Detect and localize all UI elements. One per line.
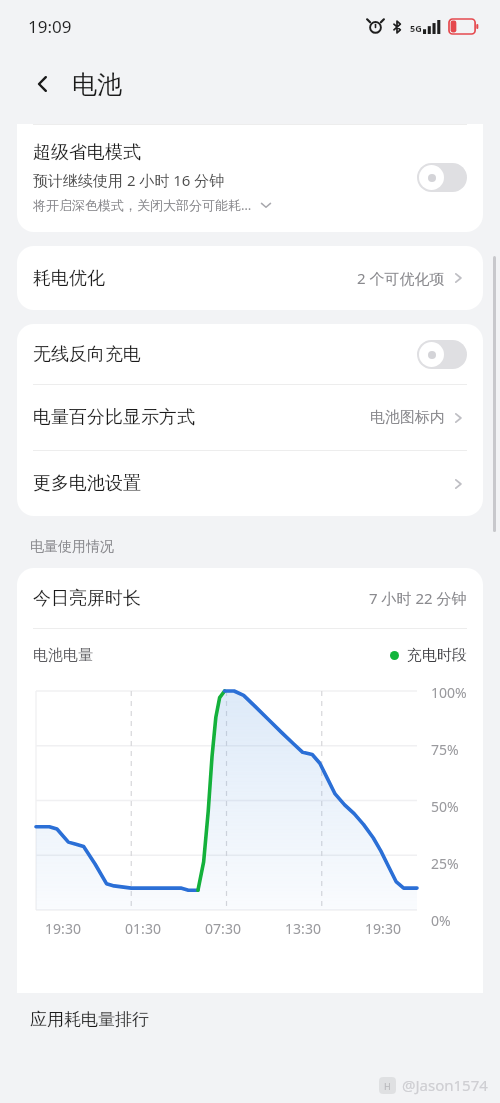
staticText: 19:30: [23, 919, 103, 938]
staticText: H: [384, 1080, 391, 1092]
staticText: 耗电优化: [33, 267, 357, 290]
staticText: 将开启深色模式，关闭大部分可能耗…: [33, 196, 252, 214]
button[interactable]: 电量百分比显示方式: [17, 385, 483, 450]
staticText: 01:30: [103, 919, 183, 938]
staticText: 7 小时 22 分钟: [369, 588, 467, 608]
staticText: 100%: [431, 683, 467, 702]
button[interactable]: 无线反向充电: [17, 324, 483, 384]
staticText: 19:09: [28, 15, 72, 38]
staticText: 07:30: [183, 919, 263, 938]
staticText: 无线反向充电: [33, 343, 417, 366]
staticText: 13:30: [263, 919, 343, 938]
button[interactable]: 耗电优化: [17, 246, 483, 310]
staticText: 更多电池设置: [33, 472, 449, 495]
staticText: 25%: [431, 854, 459, 873]
staticText: 2 个可优化项: [357, 268, 445, 288]
staticText: 电池图标内: [370, 408, 445, 427]
button[interactable]: 今日亮屏时长: [17, 568, 483, 628]
staticText: 75%: [431, 740, 459, 759]
button[interactable]: 超级省电模式: [17, 125, 483, 232]
staticText: 电量使用情况: [30, 538, 114, 556]
staticText: 超级省电模式: [33, 141, 141, 164]
staticText: 充电时段: [407, 646, 467, 665]
staticText: 电量百分比显示方式: [33, 406, 370, 429]
staticText: 电池: [72, 69, 122, 100]
staticText: 5G: [410, 22, 422, 34]
staticText: 19:30: [343, 919, 423, 938]
button[interactable]: Back: [26, 67, 60, 101]
staticText: 0%: [431, 911, 451, 930]
staticText: 电池电量: [33, 646, 390, 665]
button[interactable]: [417, 340, 467, 369]
staticText: 50%: [431, 797, 459, 816]
button[interactable]: 更多电池设置: [17, 451, 483, 516]
staticText: 今日亮屏时长: [33, 587, 369, 610]
staticText: @Jason1574: [402, 1075, 488, 1095]
button[interactable]: [417, 163, 467, 192]
staticText: 预计继续使用 2 小时 16 分钟: [33, 170, 225, 190]
staticText: 应用耗电量排行: [30, 1009, 149, 1030]
